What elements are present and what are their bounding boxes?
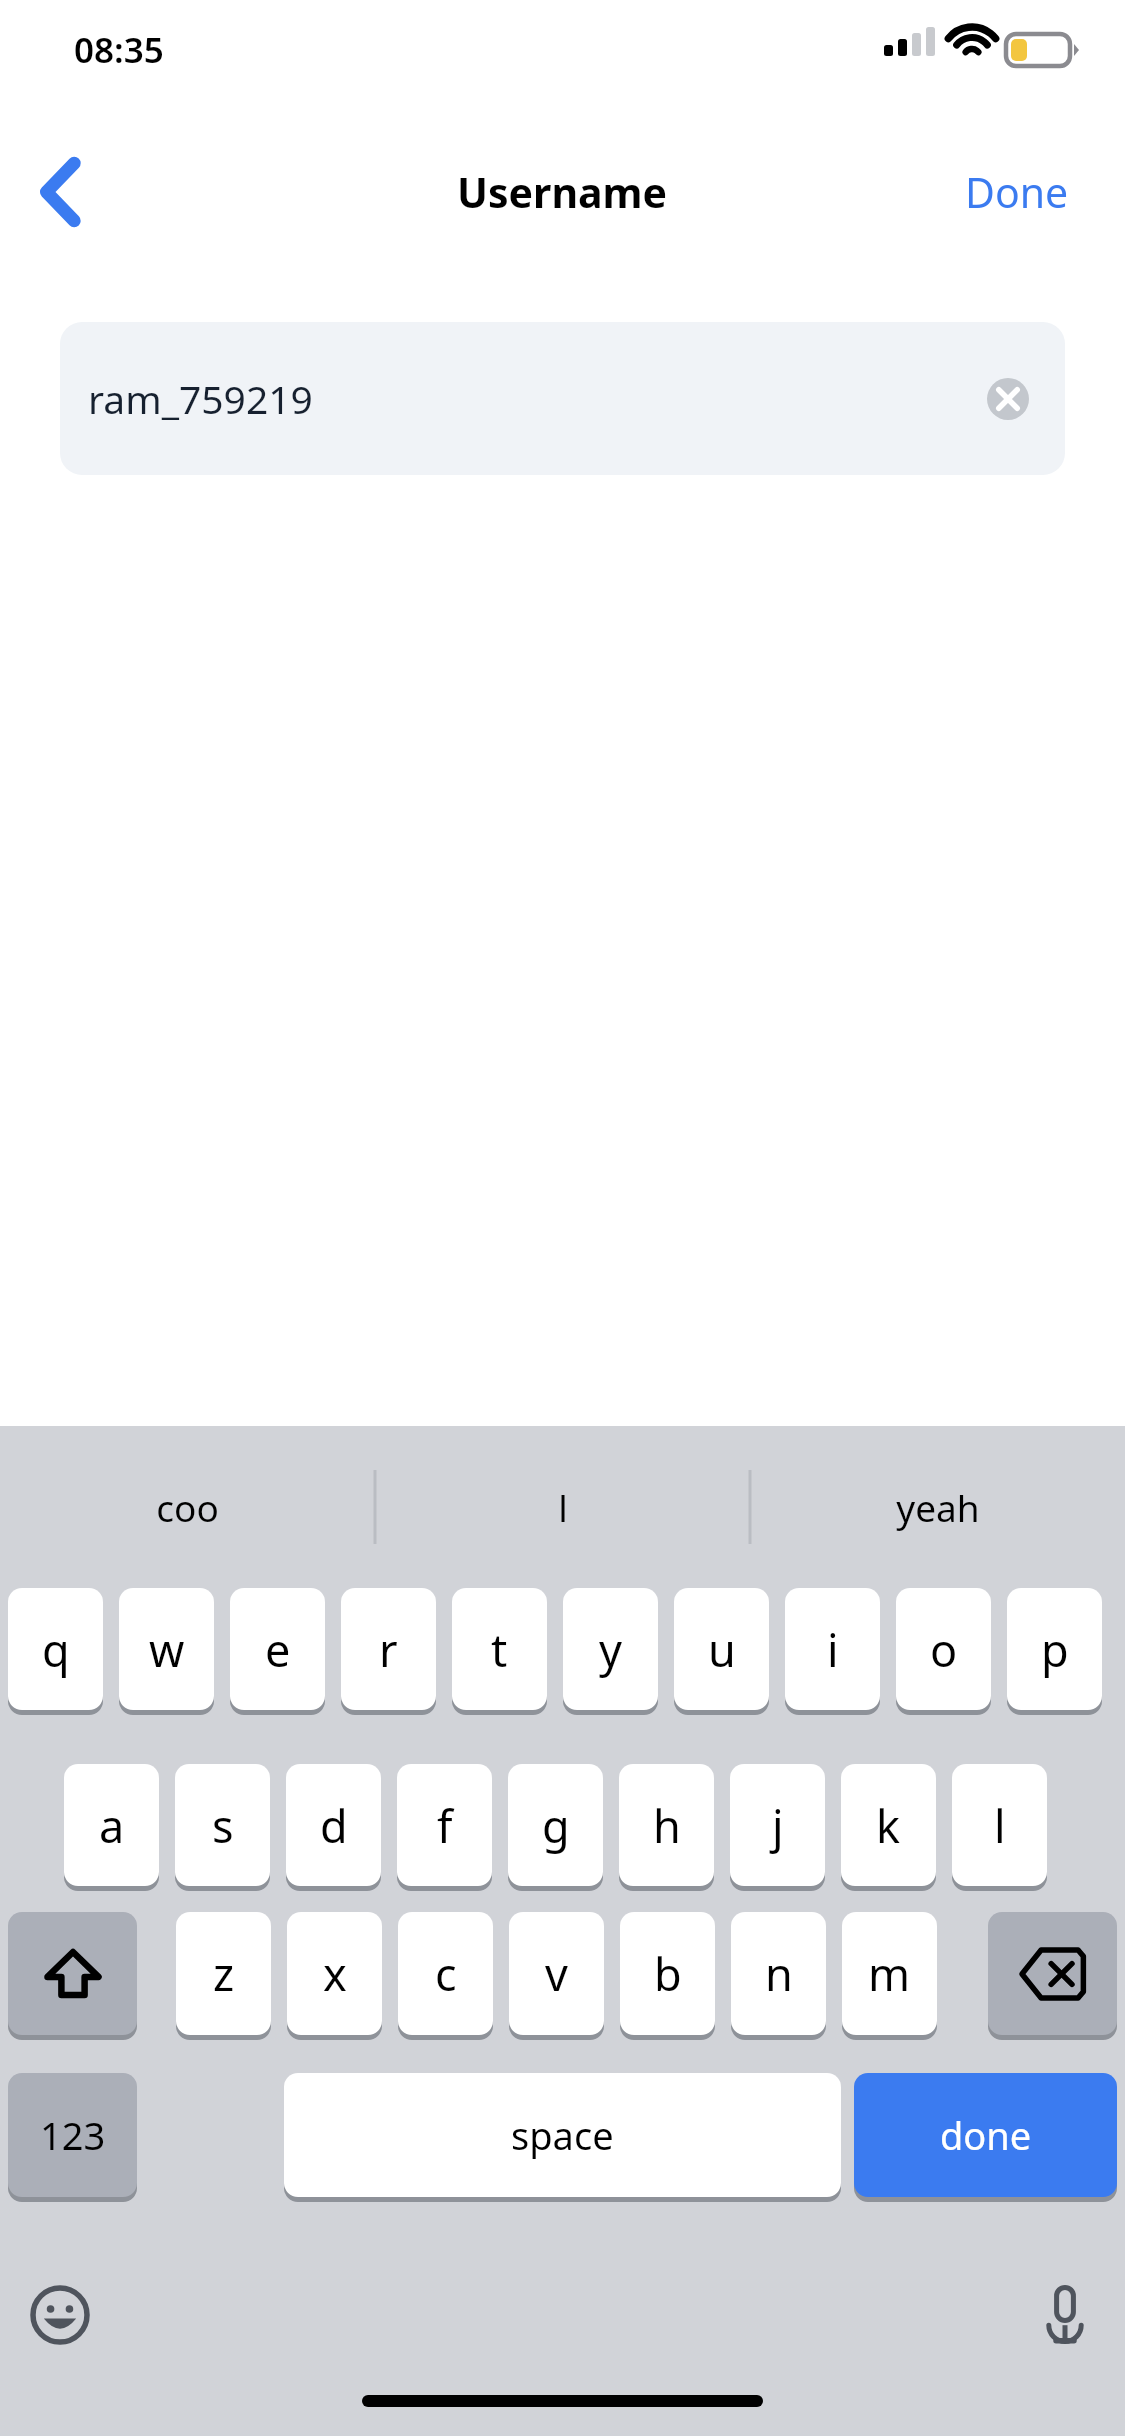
staticText: r [379, 1619, 398, 1680]
staticText: g [542, 1795, 570, 1856]
staticText: h [653, 1795, 681, 1856]
button[interactable]: coo [0, 1426, 375, 1588]
button[interactable]: d [286, 1764, 381, 1891]
staticText: e [265, 1619, 291, 1680]
staticText: n [765, 1943, 793, 2004]
button[interactable]: e [230, 1588, 325, 1715]
staticText: a [99, 1795, 125, 1856]
button[interactable]: ram_759219 [60, 322, 1065, 475]
staticText: b [654, 1943, 682, 2004]
staticText: y [599, 1619, 622, 1680]
staticText: done [940, 2109, 1032, 2161]
staticText: x [323, 1943, 347, 2004]
staticText: s [212, 1795, 234, 1856]
staticText: l [558, 1482, 568, 1532]
button[interactable]: yeah [750, 1426, 1125, 1588]
staticText: o [930, 1619, 958, 1680]
staticText: k [876, 1795, 901, 1856]
button[interactable]: f [397, 1764, 492, 1891]
staticText: w [149, 1619, 185, 1680]
button[interactable]: Clear text [976, 367, 1040, 431]
button[interactable]: Shift [8, 1912, 137, 2040]
staticText: Username [457, 164, 668, 220]
staticText: q [42, 1619, 70, 1680]
button[interactable]: w [119, 1588, 214, 1715]
button[interactable]: n [731, 1912, 826, 2040]
staticText: Done [965, 164, 1069, 220]
button[interactable]: Emoji keyboard [2, 2257, 118, 2373]
button[interactable]: z [176, 1912, 271, 2040]
staticText: yeah [896, 1482, 980, 1532]
button[interactable]: k [841, 1764, 936, 1891]
button[interactable]: v [509, 1912, 604, 2040]
staticText: c [435, 1943, 457, 2004]
button[interactable]: b [620, 1912, 715, 2040]
staticText: space [511, 2109, 614, 2161]
button[interactable]: c [398, 1912, 493, 2040]
button[interactable]: h [619, 1764, 714, 1891]
staticText: l [994, 1795, 1006, 1856]
button[interactable]: p [1007, 1588, 1102, 1715]
button[interactable]: j [730, 1764, 825, 1891]
button[interactable]: q [8, 1588, 103, 1715]
staticText: 08:35 [74, 26, 164, 74]
staticText: d [320, 1795, 348, 1856]
staticText: 123 [40, 2109, 106, 2161]
button[interactable]: a [64, 1764, 159, 1891]
button[interactable]: y [563, 1588, 658, 1715]
button[interactable]: o [896, 1588, 991, 1715]
staticText: coo [156, 1482, 219, 1532]
staticText: ram_759219 [88, 372, 313, 425]
button[interactable]: x [287, 1912, 382, 2040]
staticText: j [772, 1795, 784, 1856]
button[interactable]: l [375, 1426, 750, 1588]
button[interactable]: Backspace [988, 1912, 1117, 2040]
button[interactable]: Back [20, 146, 102, 238]
button[interactable]: 123 [8, 2073, 137, 2202]
button[interactable]: l [952, 1764, 1047, 1891]
staticText: p [1041, 1619, 1069, 1680]
staticText: i [827, 1619, 839, 1680]
button[interactable]: g [508, 1764, 603, 1891]
button[interactable]: t [452, 1588, 547, 1715]
button[interactable]: Done [965, 164, 1069, 220]
button[interactable]: i [785, 1588, 880, 1715]
staticText: f [437, 1795, 453, 1856]
button[interactable]: r [341, 1588, 436, 1715]
button[interactable]: space [284, 2073, 841, 2202]
button[interactable]: u [674, 1588, 769, 1715]
button[interactable]: m [842, 1912, 937, 2040]
staticText: m [868, 1943, 911, 2004]
staticText: z [213, 1943, 235, 2004]
staticText: t [491, 1619, 508, 1680]
staticText: v [545, 1943, 568, 2004]
button[interactable]: done [854, 2073, 1117, 2202]
staticText: u [708, 1619, 736, 1680]
button[interactable]: s [175, 1764, 270, 1891]
button[interactable]: Dictation [1007, 2257, 1123, 2373]
